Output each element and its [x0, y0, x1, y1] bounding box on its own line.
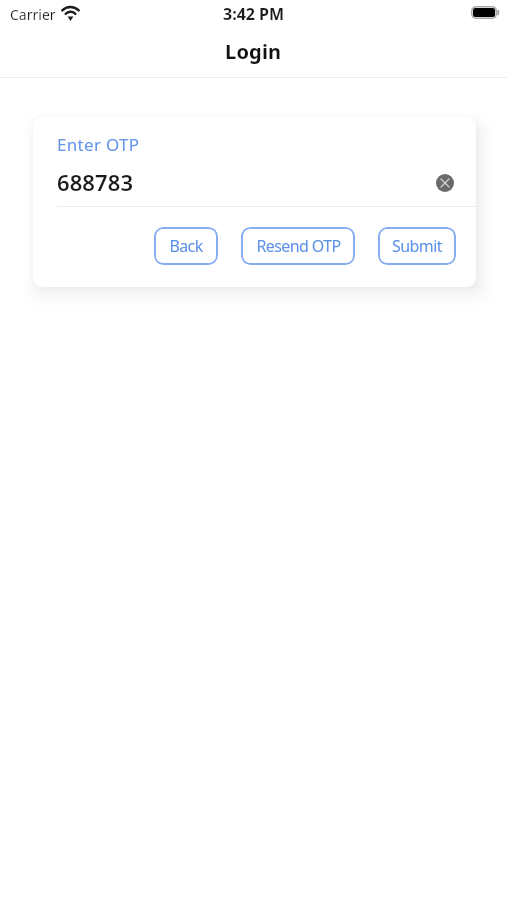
- button[interactable]: Submit: [378, 227, 456, 265]
- staticText: Resend OTP: [256, 235, 341, 257]
- staticText: 688783: [57, 167, 436, 197]
- button[interactable]: Back: [154, 227, 218, 265]
- staticText: Enter OTP: [57, 133, 140, 156]
- button[interactable]: Clear text: [436, 174, 454, 192]
- staticText: Back: [169, 235, 203, 257]
- staticText: Submit: [392, 235, 442, 257]
- staticText: Login: [225, 38, 282, 65]
- staticText: Carrier: [10, 5, 56, 24]
- staticText: 3:42 PM: [223, 3, 285, 25]
- button[interactable]: Resend OTP: [241, 227, 355, 265]
